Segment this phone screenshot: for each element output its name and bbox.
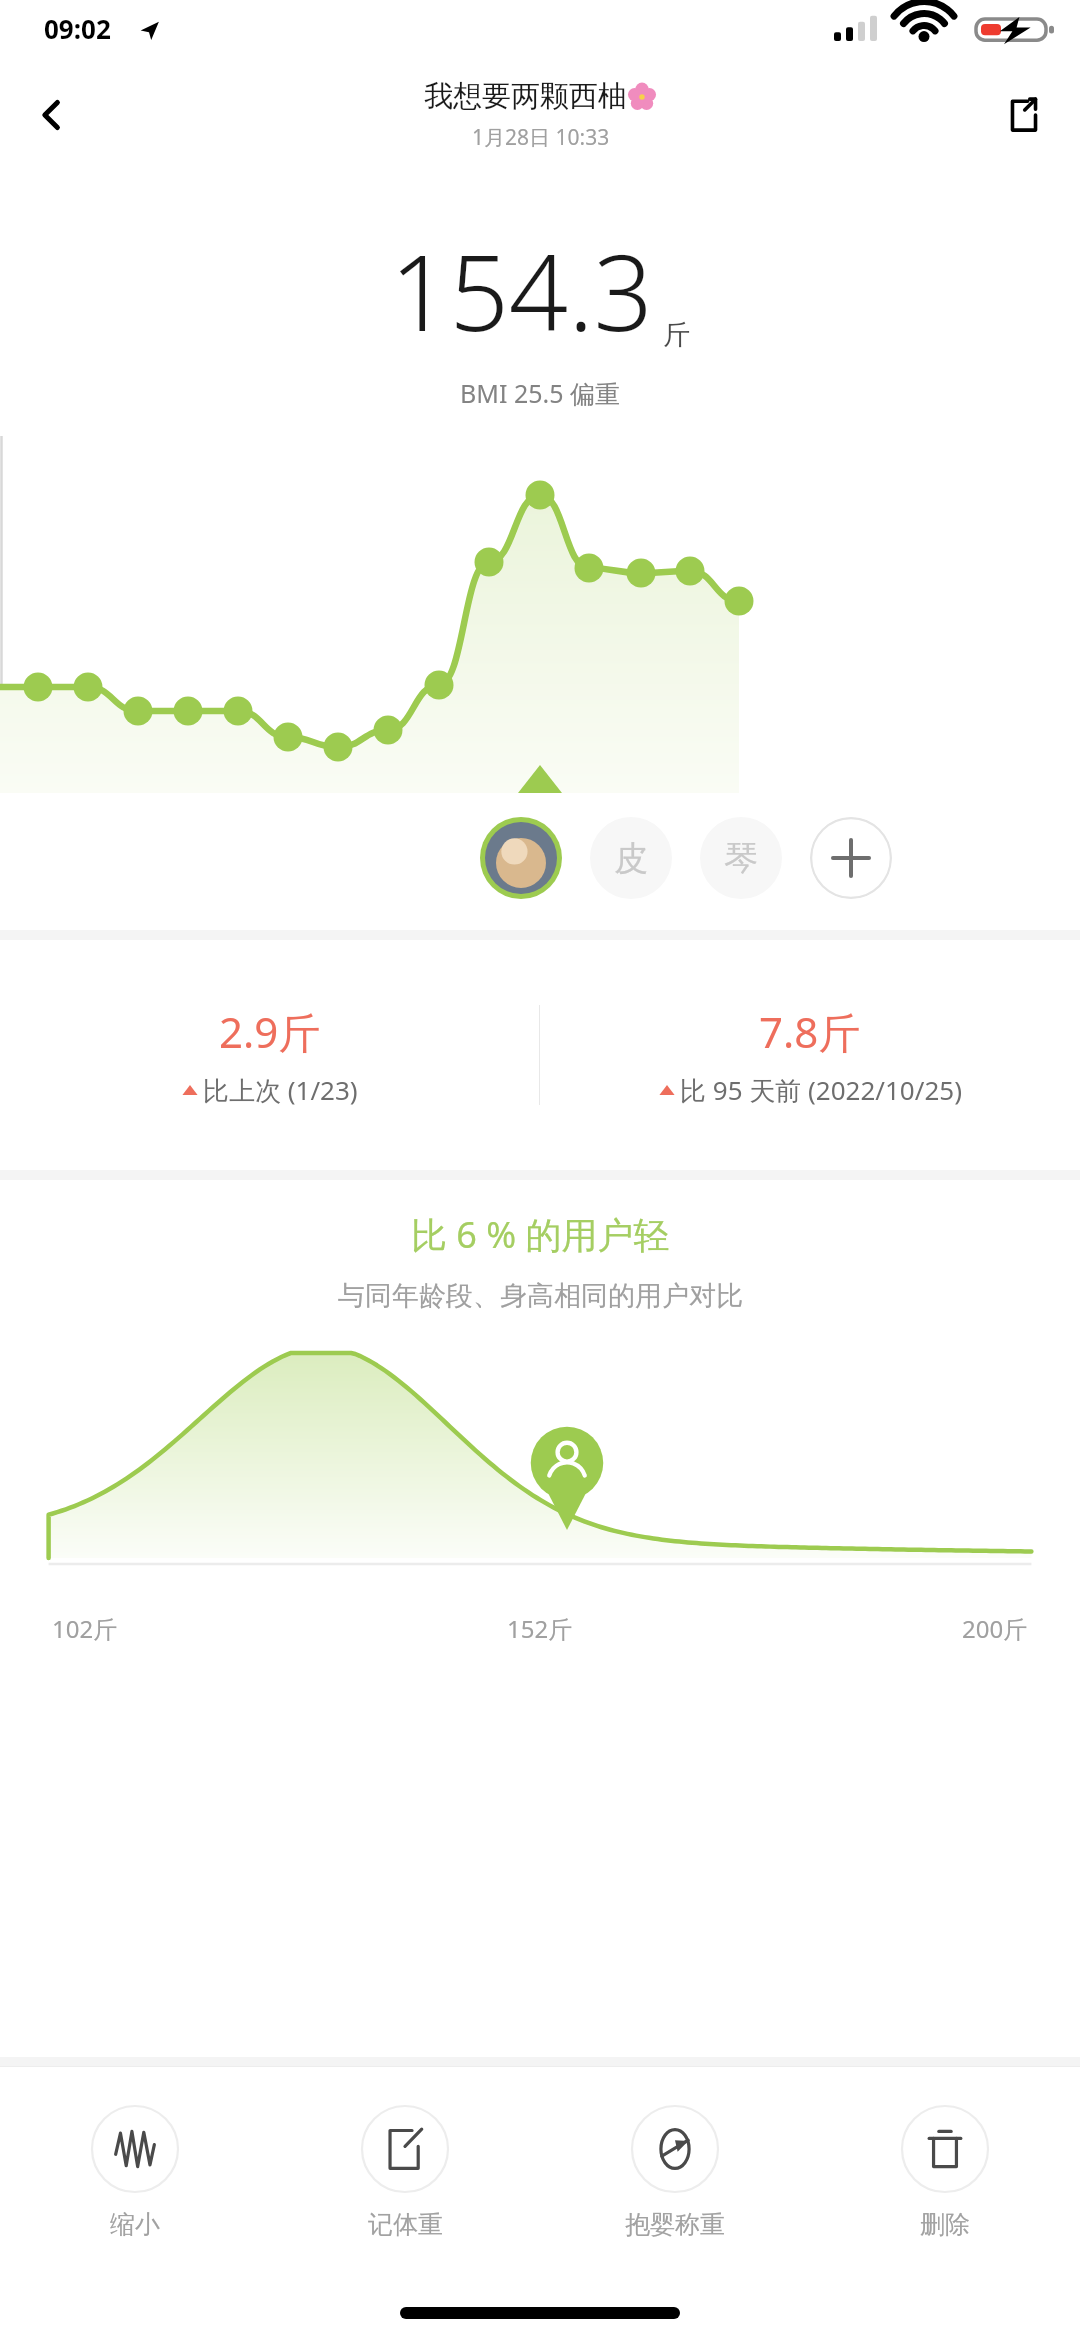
staticText: BMI 25.5 偏重	[460, 376, 621, 410]
staticText: 缩小	[110, 2209, 160, 2240]
button[interactable]: 抱婴称重	[540, 2067, 810, 2277]
staticText: 2.9斤	[219, 1003, 321, 1060]
staticText: 比上次 (1/23)	[203, 1072, 358, 1108]
button[interactable]: 2.9斤	[0, 940, 539, 1170]
button[interactable]: 7.8斤	[540, 940, 1080, 1170]
button[interactable]: 用户头像	[480, 817, 562, 899]
staticText: 比 6 % 的用户轻	[411, 1210, 670, 1259]
button[interactable]: 删除	[810, 2067, 1080, 2277]
staticText: 与同年龄段、身高相同的用户对比	[338, 1279, 743, 1313]
staticText: 删除	[920, 2209, 970, 2240]
staticText: 154.3	[390, 220, 653, 362]
staticText: 皮	[614, 837, 648, 880]
staticText: 200斤	[962, 1612, 1028, 1645]
staticText: 琴	[724, 837, 758, 880]
staticText: 我想要两颗西柚	[424, 78, 627, 115]
staticText: 1月28日 10:33	[472, 123, 610, 152]
staticText: 比 95 天前 (2022/10/25)	[680, 1072, 962, 1108]
button[interactable]: 添加	[810, 817, 892, 899]
button[interactable]: 皮	[590, 817, 672, 899]
staticText: 152斤	[507, 1612, 573, 1645]
staticText: 抱婴称重	[625, 2209, 725, 2240]
staticText: 102斤	[52, 1612, 118, 1645]
staticText: 斤	[663, 318, 690, 352]
staticText: 09:02	[44, 11, 111, 46]
staticText: 记体重	[368, 2209, 443, 2240]
button[interactable]: 琴	[700, 817, 782, 899]
staticText: 7.8斤	[759, 1003, 861, 1060]
button[interactable]: 缩小	[0, 2067, 270, 2277]
button[interactable]: 记体重	[270, 2067, 540, 2277]
button[interactable]: Back	[20, 83, 84, 147]
button[interactable]: Share	[992, 83, 1056, 147]
